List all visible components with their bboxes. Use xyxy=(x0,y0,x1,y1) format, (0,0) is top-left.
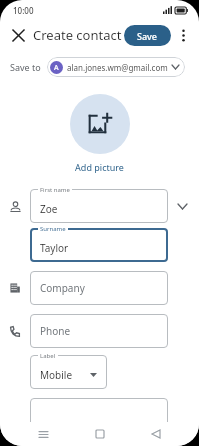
button[interactable]: First name xyxy=(30,189,168,223)
staticText: 10:00 xyxy=(13,5,34,16)
staticText: Label xyxy=(40,352,56,360)
staticText: First name xyxy=(40,186,70,194)
button[interactable]: Add picture xyxy=(70,94,130,154)
staticText: Mobile xyxy=(40,368,73,382)
button[interactable]: Phone xyxy=(30,314,168,348)
staticText: Phone xyxy=(40,324,71,338)
staticText: Zoe xyxy=(40,202,58,216)
staticText: A xyxy=(54,63,59,73)
staticText: Save xyxy=(137,30,158,42)
button[interactable]: A xyxy=(47,57,185,77)
button[interactable]: More options xyxy=(171,23,195,47)
staticText: Taylor xyxy=(40,241,69,255)
button[interactable]: Company xyxy=(30,271,168,305)
button[interactable]: Expand name fields xyxy=(172,196,192,216)
button[interactable]: Close xyxy=(5,22,31,48)
staticText: Company xyxy=(40,281,85,295)
staticText: Save to xyxy=(10,61,41,73)
button[interactable] xyxy=(30,398,168,432)
button[interactable]: Home xyxy=(87,422,113,446)
button[interactable]: Surname xyxy=(30,228,168,262)
button[interactable]: Back xyxy=(143,422,169,446)
button[interactable]: Label xyxy=(30,355,107,389)
button[interactable]: Save xyxy=(124,25,171,46)
staticText: Create contact xyxy=(33,26,122,44)
button[interactable]: Recent apps xyxy=(30,422,56,446)
staticText: alan.jones.wm@gmail.com xyxy=(67,62,168,73)
staticText: Surname xyxy=(40,225,66,233)
button[interactable]: Add picture xyxy=(75,161,124,173)
